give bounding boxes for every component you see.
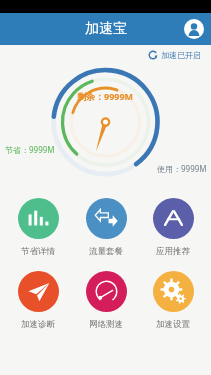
staticText: 加速宝 <box>85 20 127 38</box>
staticText: 加速诊断 <box>21 319 55 330</box>
button[interactable]: 应用推荐 <box>144 198 202 257</box>
staticText: 网络测速 <box>89 319 123 330</box>
button[interactable]: Account <box>183 18 205 40</box>
staticText: 应用推荐 <box>156 246 190 257</box>
staticText: 剩余：9999M <box>77 90 134 102</box>
staticText: 流量套餐 <box>89 246 123 257</box>
staticText: 使用：9999M <box>157 163 207 174</box>
button[interactable]: 加速已开启 <box>148 50 201 60</box>
staticText: 节省详情 <box>21 246 55 257</box>
staticText: 加速已开启 <box>161 50 201 60</box>
button[interactable]: 节省详情 <box>9 198 67 257</box>
button[interactable]: 流量套餐 <box>77 198 135 257</box>
staticText: 加速设置 <box>156 319 190 330</box>
button[interactable]: 网络测速 <box>77 271 135 330</box>
button[interactable]: 加速设置 <box>144 271 202 330</box>
button[interactable]: 加速诊断 <box>9 271 67 330</box>
staticText: 节省：9999M <box>5 144 55 155</box>
